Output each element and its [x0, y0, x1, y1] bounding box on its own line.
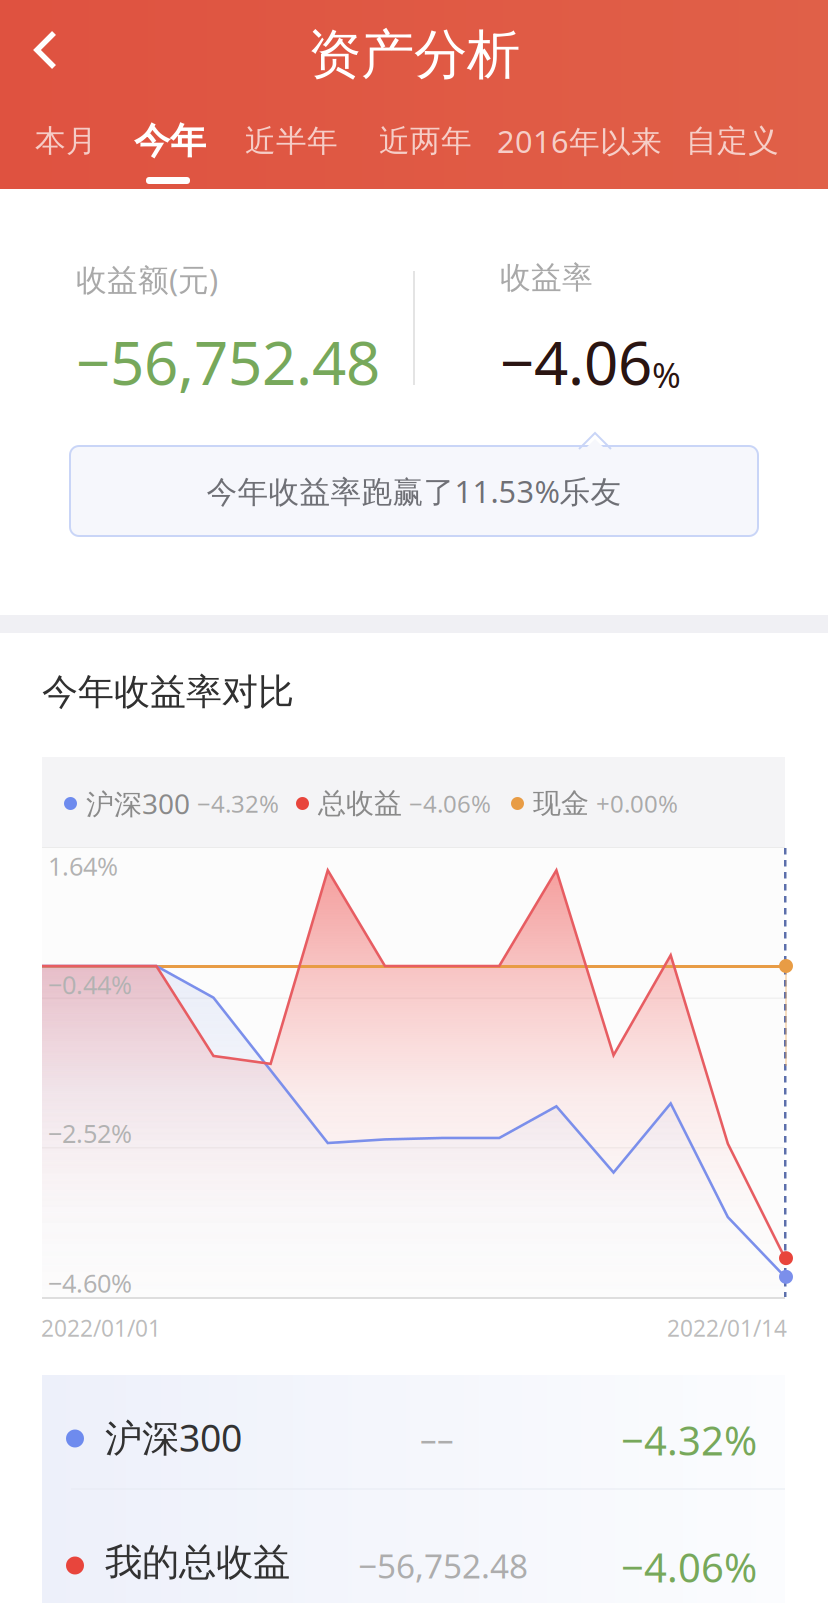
button[interactable]: 自定义 [686, 122, 779, 160]
staticText: 我的总收益 [105, 1539, 290, 1585]
staticText: 现金 [533, 786, 589, 821]
staticText: 自定义 [686, 122, 779, 160]
button[interactable]: 近两年 [379, 122, 497, 160]
staticText: 沪深300 [86, 785, 190, 822]
staticText: 总收益 [318, 786, 402, 821]
staticText: +0.00% [596, 788, 678, 819]
staticText: 1.64% [48, 849, 118, 883]
staticText: 沪深300 [105, 1412, 242, 1462]
staticText: −4.06 [500, 322, 652, 402]
staticText: 2022/01/01 [41, 1313, 161, 1343]
button[interactable]: 我的总收益 [42, 1489, 785, 1603]
button[interactable]: 今年 [134, 119, 245, 163]
staticText: −56,752.48 [76, 322, 380, 402]
staticText: −4.06% [409, 788, 491, 819]
staticText: −0.44% [48, 968, 132, 1001]
staticText: 本月 [35, 122, 97, 160]
button[interactable]: 沪深300 [42, 1362, 785, 1488]
staticText: −56,752.48 [358, 1543, 528, 1588]
staticText: 资产分析 [308, 22, 520, 87]
staticText: 2016年以来 [497, 121, 662, 161]
staticText: −4.06% [621, 1540, 757, 1594]
staticText: 收益率 [500, 259, 593, 297]
button[interactable]: 本月 [35, 122, 134, 160]
staticText: 2022/01/14 [667, 1313, 787, 1343]
button[interactable]: 2016年以来 [497, 121, 686, 161]
button[interactable]: 近半年 [245, 122, 379, 160]
staticText: −4.32% [621, 1413, 757, 1467]
staticText: 今年收益率对比 [42, 670, 294, 714]
button[interactable]: Back [18, 24, 73, 76]
staticText: 今年 [134, 119, 206, 163]
staticText: −4.60% [48, 1266, 132, 1300]
staticText: % [652, 352, 681, 398]
staticText: 收益额(元) [76, 259, 218, 300]
staticText: –– [420, 1416, 454, 1461]
staticText: 近半年 [245, 122, 338, 160]
staticText: 近两年 [379, 122, 472, 160]
staticText: −4.32% [197, 788, 279, 819]
staticText: 今年收益率跑赢了11.53%乐友 [206, 471, 621, 511]
staticText: −2.52% [48, 1116, 132, 1150]
